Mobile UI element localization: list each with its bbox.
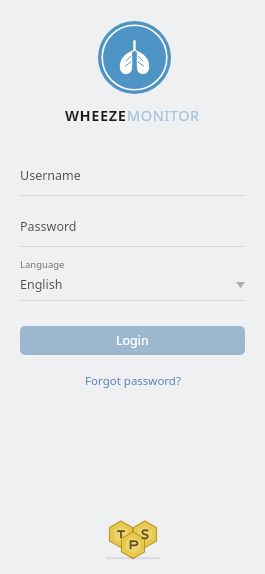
button[interactable]: Username — [0, 167, 265, 196]
button[interactable]: Forgot password? — [77, 371, 189, 391]
staticText: WHEEZE — [65, 105, 127, 125]
button[interactable]: Password — [0, 218, 265, 247]
staticText: English — [20, 276, 236, 293]
staticText: Username — [20, 167, 81, 184]
staticText: Password — [20, 218, 77, 235]
button[interactable]: Login — [20, 326, 245, 355]
other: TPS logo — [102, 520, 164, 562]
staticText: Language — [20, 258, 65, 271]
staticText: Forgot password? — [85, 373, 181, 389]
staticText: Login — [116, 332, 149, 349]
other: Select language — [236, 282, 245, 288]
button[interactable]: Language — [0, 258, 265, 301]
staticText: MONITOR — [127, 105, 200, 125]
